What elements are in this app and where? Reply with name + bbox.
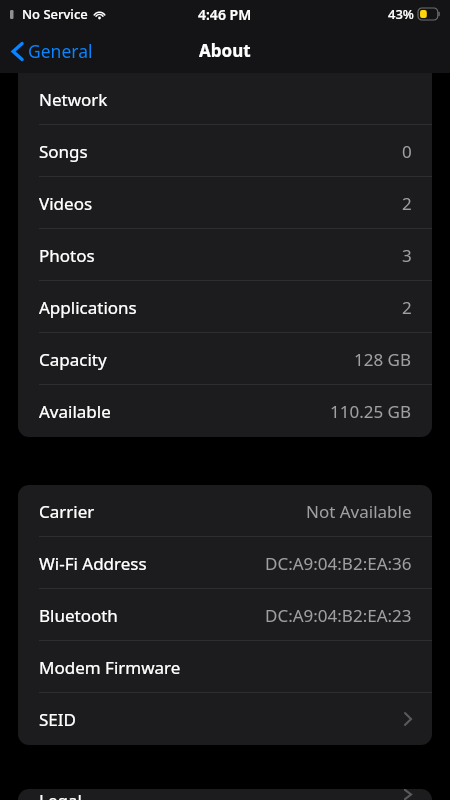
button[interactable]: Songs xyxy=(18,125,432,177)
button[interactable]: Videos xyxy=(18,177,432,229)
staticText: General xyxy=(28,39,93,63)
staticText: 3 xyxy=(402,244,412,267)
button[interactable]: Wi-Fi Address xyxy=(18,537,432,589)
staticText: Capacity xyxy=(39,348,107,371)
button[interactable]: Applications xyxy=(18,281,432,333)
staticText: 0 xyxy=(402,140,412,163)
staticText: 2 xyxy=(402,296,412,319)
button[interactable]: Modem Firmware xyxy=(18,641,432,693)
staticText: DC:A9:04:B2:EA:36 xyxy=(265,552,412,575)
staticText: 43% xyxy=(388,5,414,23)
staticText: Photos xyxy=(39,244,95,267)
button[interactable]: General xyxy=(0,33,103,69)
staticText: No Service xyxy=(22,5,88,23)
staticText: 110.25 GB xyxy=(330,400,412,423)
button[interactable]: Available xyxy=(18,385,432,437)
button[interactable]: Photos xyxy=(18,229,432,281)
staticText: 128 GB xyxy=(354,348,412,371)
staticText: 4:46 PM xyxy=(198,5,252,24)
staticText: Legal xyxy=(39,789,82,800)
staticText: About xyxy=(199,39,251,62)
button[interactable]: Carrier xyxy=(18,485,432,537)
staticText: Modem Firmware xyxy=(39,656,181,679)
staticText: Applications xyxy=(39,296,137,319)
button[interactable]: SEID xyxy=(18,693,432,745)
staticText: Videos xyxy=(39,192,93,215)
staticText: Wi-Fi Address xyxy=(39,552,147,575)
staticText: Available xyxy=(39,400,111,423)
button[interactable]: Legal xyxy=(18,789,432,800)
staticText: Songs xyxy=(39,140,88,163)
staticText: Network xyxy=(39,88,108,111)
staticText: DC:A9:04:B2:EA:23 xyxy=(265,604,412,627)
staticText: 2 xyxy=(402,192,412,215)
staticText: Not Available xyxy=(306,500,412,523)
button[interactable]: Bluetooth xyxy=(18,589,432,641)
button[interactable]: Capacity xyxy=(18,333,432,385)
button[interactable]: Network xyxy=(18,73,432,125)
staticText: SEID xyxy=(39,708,76,731)
staticText: Carrier xyxy=(39,500,95,523)
staticText: Bluetooth xyxy=(39,604,118,627)
